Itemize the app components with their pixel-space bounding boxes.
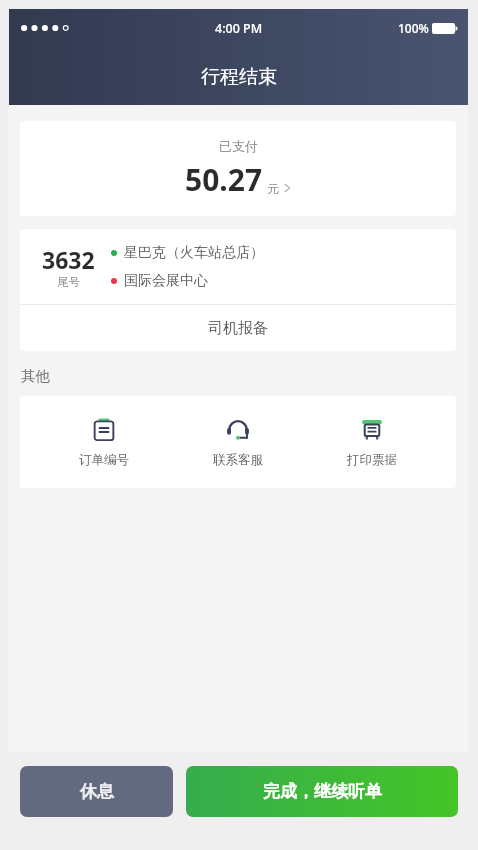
staticText: 4:00 PM (215, 20, 263, 37)
button[interactable]: Contact support (188, 411, 288, 474)
button[interactable]: 完成，继续听单 (186, 766, 458, 817)
button[interactable]: Order number (54, 411, 154, 474)
staticText: 元 (267, 181, 279, 196)
staticText: 50.27 (185, 159, 263, 200)
staticText: 3632 (42, 244, 95, 275)
staticText: 国际会展中心 (124, 272, 208, 290)
other: Print receipt (359, 417, 385, 443)
staticText: 其他 (21, 367, 50, 385)
staticText: 行程结束 (201, 65, 277, 89)
staticText: 尾号 (57, 275, 80, 289)
button[interactable]: 已支付 (20, 121, 456, 216)
button[interactable]: Print receipt (322, 411, 422, 474)
button[interactable]: 休息 (20, 766, 173, 817)
staticText: 订单编号 (79, 452, 129, 468)
staticText: 联系客服 (213, 452, 263, 468)
button[interactable]: 司机报备 (20, 305, 456, 351)
staticText: 打印票据 (347, 452, 397, 468)
staticText: 休息 (80, 781, 114, 802)
staticText: 完成，继续听单 (263, 781, 382, 802)
other: Contact support (225, 417, 251, 443)
staticText: 星巴克（火车站总店） (124, 244, 264, 262)
staticText: 已支付 (219, 138, 258, 154)
other: Order number (91, 417, 117, 443)
staticText: 100% (398, 20, 429, 36)
button[interactable]: 3632 (20, 229, 456, 304)
staticText: 司机报备 (208, 319, 268, 338)
